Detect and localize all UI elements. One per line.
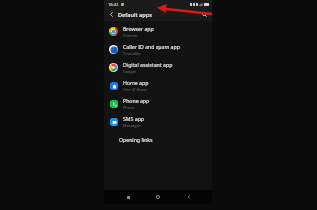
staticText: 18:42 xyxy=(108,2,119,7)
staticText: SMS app xyxy=(123,115,145,122)
staticText: Digital assistant app xyxy=(123,61,173,68)
staticText: Google xyxy=(123,69,136,74)
button[interactable]: Opening links xyxy=(104,130,212,148)
button[interactable]: Back xyxy=(182,190,196,204)
button[interactable]: Home xyxy=(151,190,165,204)
button[interactable]: Search xyxy=(199,9,210,20)
staticText: Phone app xyxy=(123,97,150,104)
staticText: Opening links xyxy=(119,136,153,143)
staticText: Caller ID and spam app xyxy=(123,43,180,50)
button[interactable]: Browser app xyxy=(104,22,212,40)
button[interactable]: SMS app xyxy=(104,112,212,130)
button[interactable]: Digital assistant app xyxy=(104,58,212,76)
button[interactable]: Back xyxy=(106,9,117,20)
button[interactable]: Home app xyxy=(104,76,212,94)
button[interactable]: Phone app xyxy=(104,94,212,112)
staticText: Messages xyxy=(123,123,141,128)
staticText: Browser app xyxy=(123,25,154,32)
staticText: Truecaller xyxy=(123,51,141,56)
button[interactable]: Recents xyxy=(121,190,135,204)
button[interactable]: Caller ID and spam app xyxy=(104,40,212,58)
staticText: One UI Home xyxy=(123,87,148,92)
staticText: Home app xyxy=(123,79,149,86)
staticText: Phone xyxy=(123,105,135,110)
staticText: Default apps xyxy=(118,11,152,19)
staticText: Chrome xyxy=(123,33,138,38)
